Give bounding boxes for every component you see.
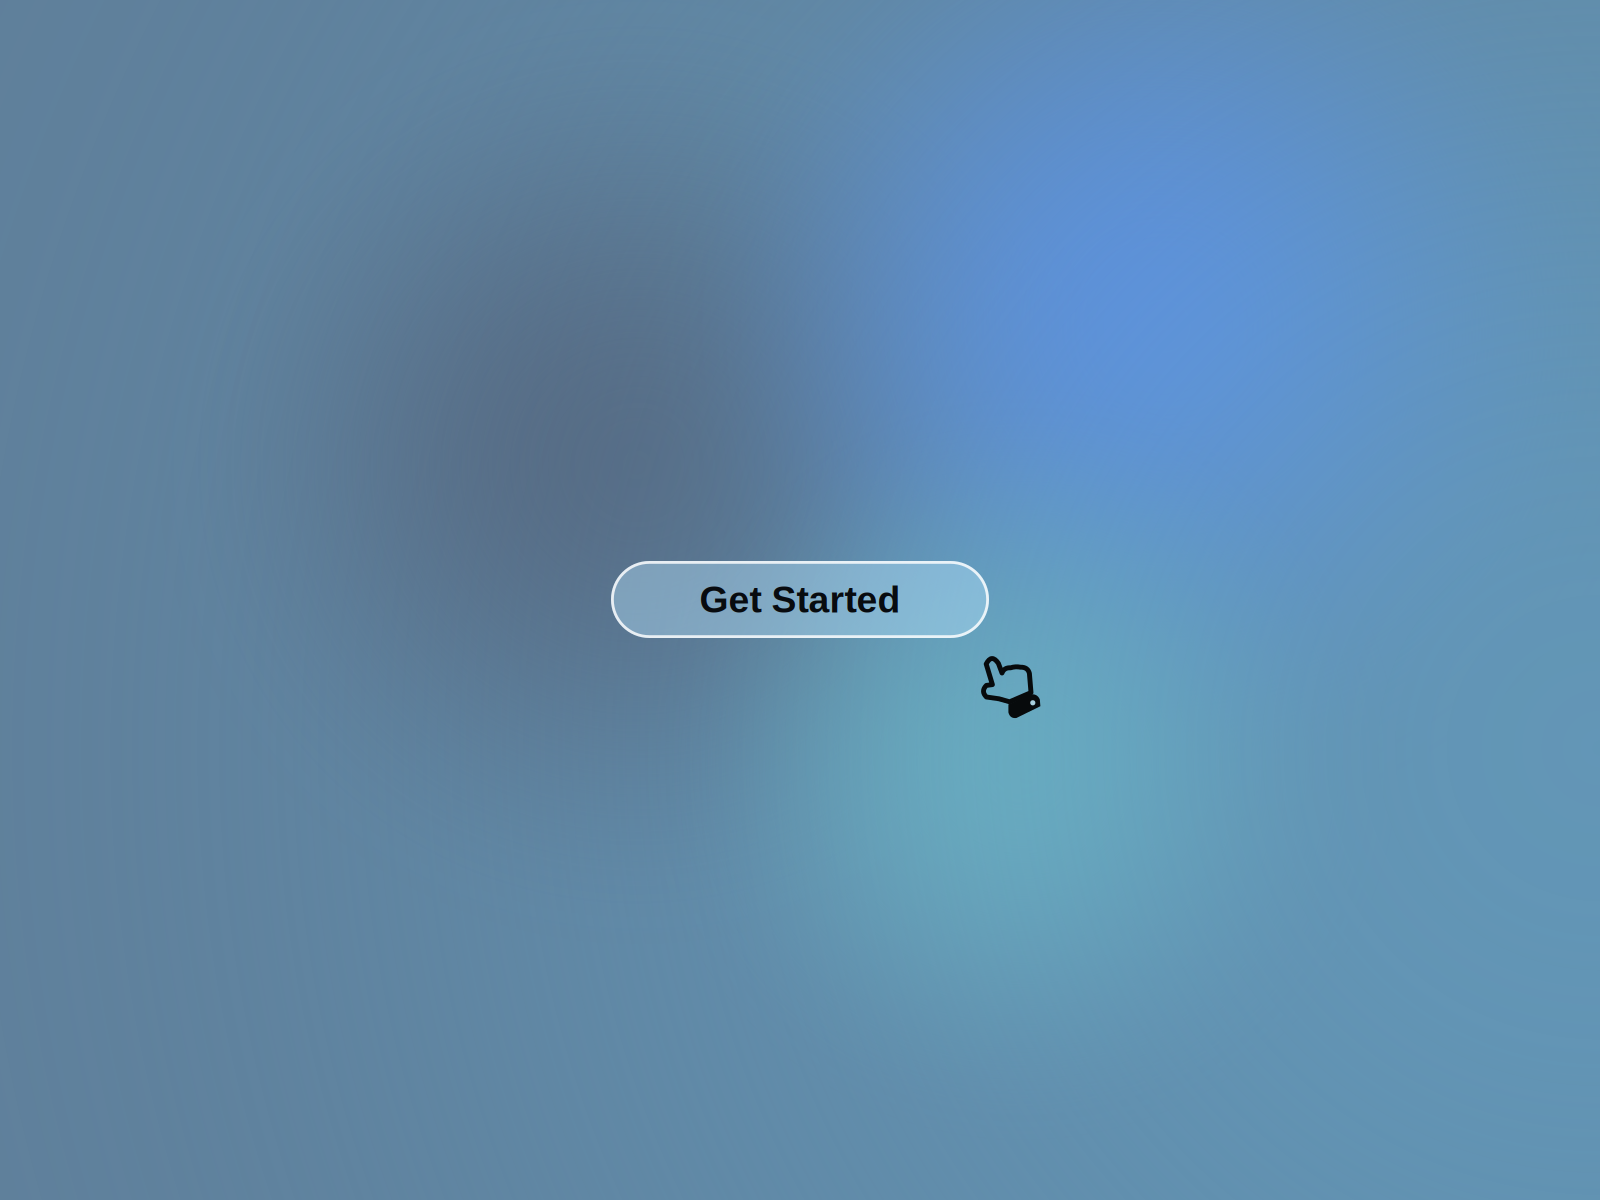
button[interactable]: Get Started <box>611 561 989 638</box>
staticText: Get Started <box>699 579 900 620</box>
